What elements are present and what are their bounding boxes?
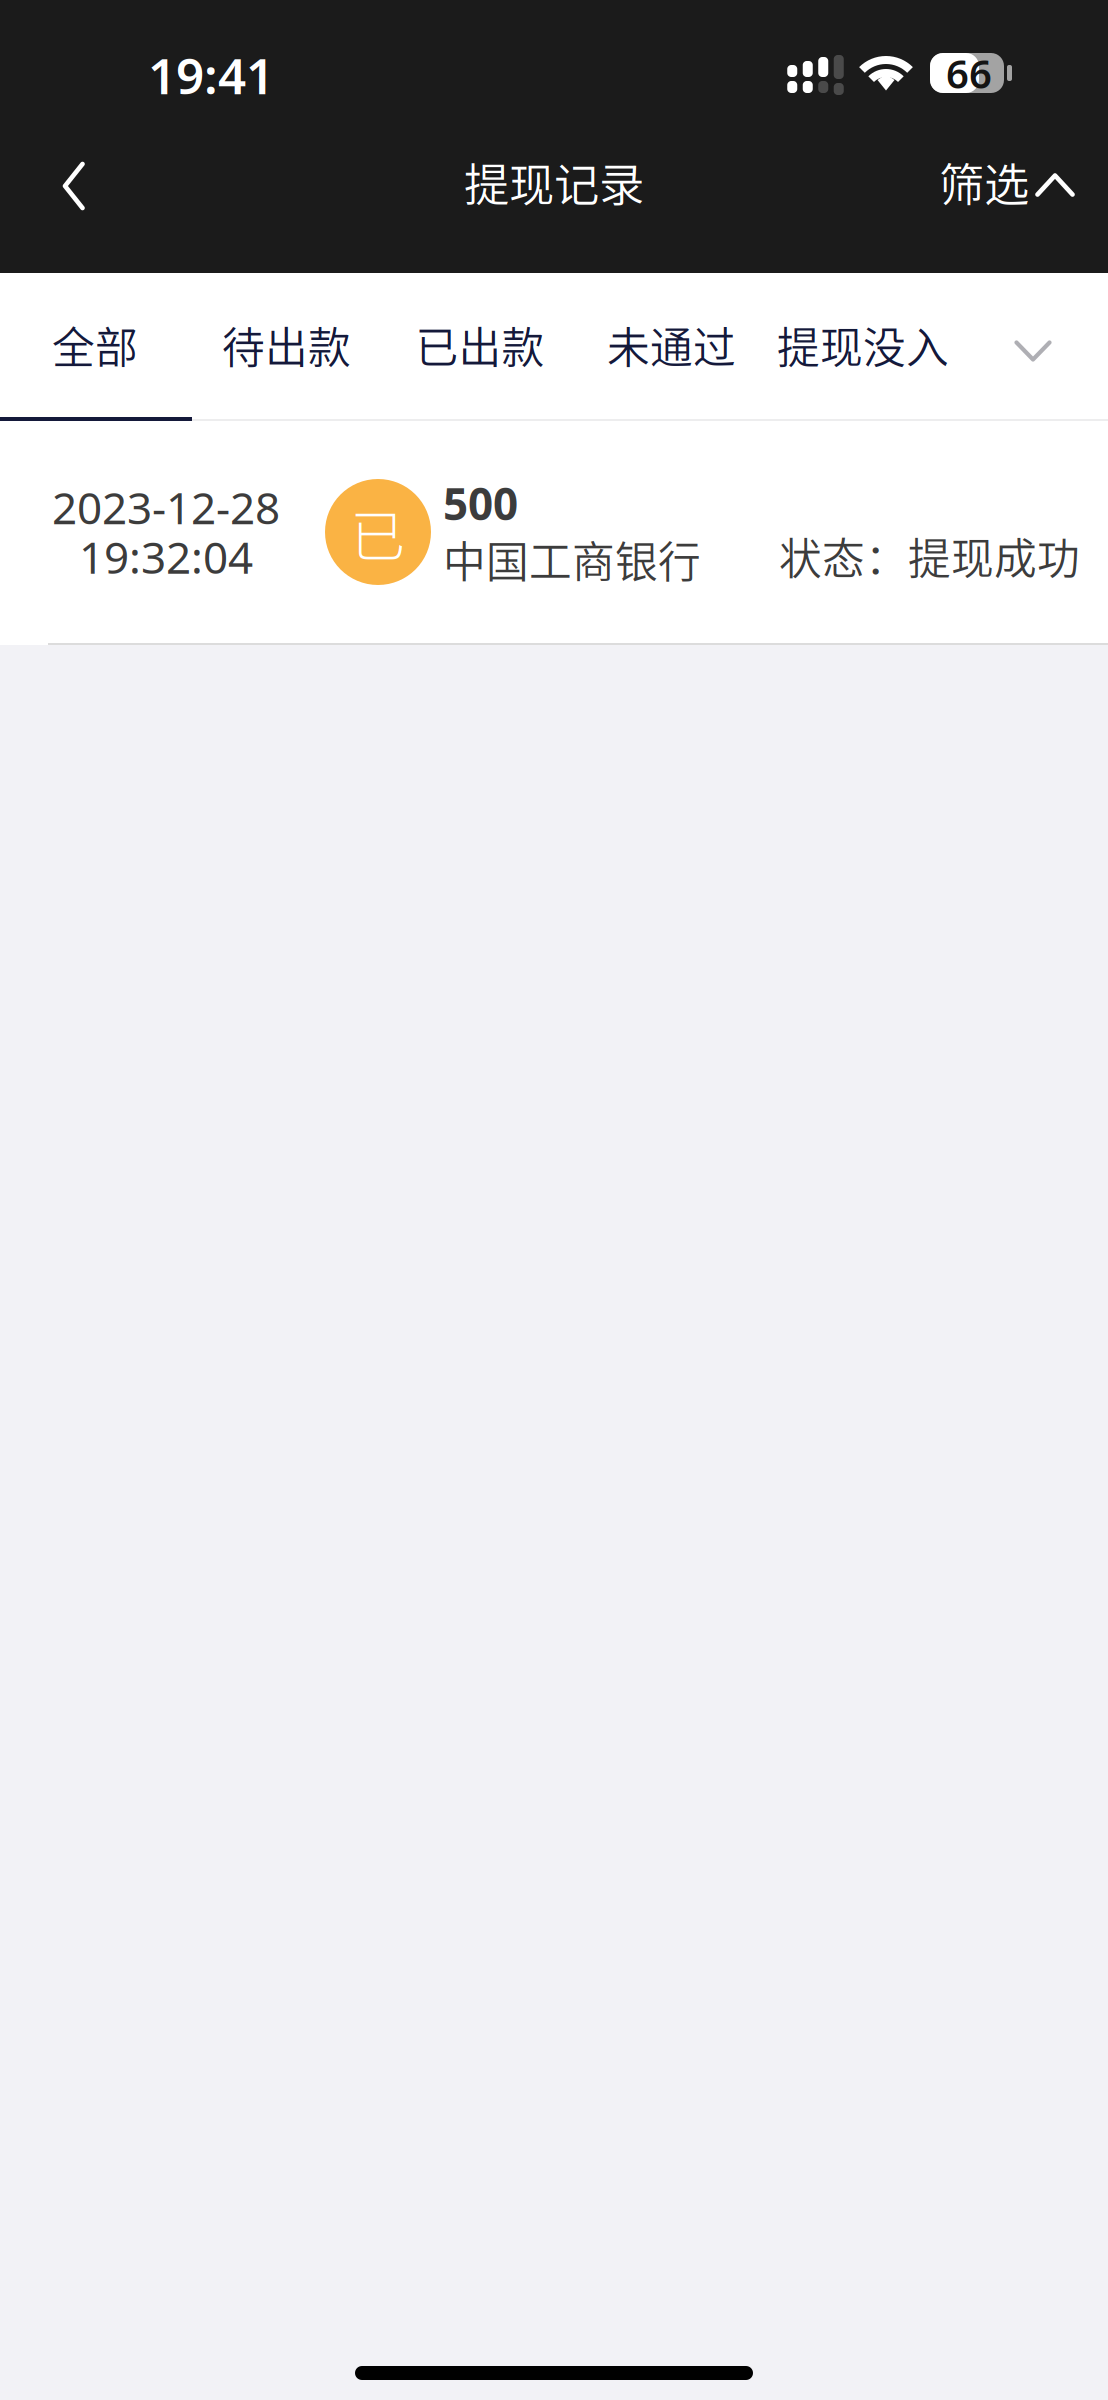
- staticText: 2023-12-28: [52, 478, 280, 536]
- button[interactable]: 全部: [0, 273, 190, 417]
- button[interactable]: 待出款: [190, 273, 383, 417]
- button[interactable]: 2023-12-28: [0, 421, 1108, 645]
- staticText: 已: [350, 492, 405, 572]
- staticText: 500: [443, 474, 518, 532]
- staticText: 待出款: [222, 314, 351, 376]
- button[interactable]: 未通过: [577, 273, 766, 417]
- staticText: 未通过: [607, 314, 736, 376]
- button[interactable]: 提现没入: [766, 273, 960, 417]
- staticText: 中国工商银行: [443, 528, 701, 590]
- staticText: 状态：提现成功: [779, 525, 1080, 587]
- staticText: 已出款: [415, 314, 544, 376]
- staticText: 66: [946, 46, 992, 99]
- button[interactable]: Show more filters: [960, 273, 1108, 417]
- staticText: 全部: [52, 314, 138, 376]
- staticText: 提现没入: [777, 314, 949, 376]
- button[interactable]: 已出款: [383, 273, 577, 417]
- button[interactable]: Back: [0, 132, 147, 232]
- button[interactable]: 筛选: [939, 132, 1108, 232]
- staticText: 筛选: [939, 149, 1029, 215]
- staticText: 19:32:04: [79, 527, 253, 586]
- staticText: 19:41: [148, 42, 274, 108]
- staticText: 提现记录: [464, 149, 644, 215]
